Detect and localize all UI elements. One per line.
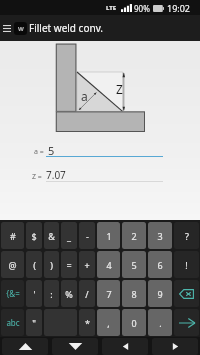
staticText: 0 [131,317,137,329]
button[interactable]: * [79,309,95,336]
button[interactable]: ' [26,280,42,307]
button[interactable]: , [97,309,120,336]
staticText: . [159,317,162,329]
button[interactable]: @ [1,251,24,278]
staticText: & [48,230,55,242]
staticText: @ [8,259,17,271]
button[interactable]: 7 [97,280,120,307]
staticText: = [66,259,72,271]
button[interactable]: abc [1,309,24,336]
staticText: 7.07 [46,168,66,182]
button[interactable]: + [79,251,95,278]
staticText: , [107,317,110,329]
staticText: Z [116,81,123,97]
button[interactable]: 8 [122,280,146,307]
button[interactable]: 1 [97,222,120,249]
staticText: LTE [106,4,117,12]
button[interactable]: $ [26,222,42,249]
staticText: a = [34,147,44,157]
button[interactable]: % [61,280,77,307]
staticText: Z = [32,172,42,182]
button[interactable]: Enter [174,309,199,336]
button[interactable]: ? [174,222,199,249]
button[interactable]: & [44,222,59,249]
button[interactable]: " [26,309,42,336]
staticText: # [10,230,16,242]
button[interactable]: 0 [122,309,146,336]
button[interactable]: = [61,251,77,278]
button[interactable]: Cursor up [2,338,48,355]
staticText: 90% [134,3,150,14]
staticText: 4 [106,259,112,271]
staticText: Fillet weld conv. [29,21,103,35]
button[interactable]: Open navigation menu [0,15,14,41]
staticText: ! [185,259,188,271]
staticText: _ [67,230,71,242]
staticText: % [65,288,73,300]
staticText: W [18,25,24,33]
staticText: {&= [6,288,20,299]
button[interactable]: 4 [97,251,120,278]
staticText: - [86,230,89,242]
button[interactable]: : [44,280,59,307]
staticText: " [32,317,36,329]
staticText: a [81,88,88,104]
staticText: 9 [157,288,163,300]
button[interactable]: {&= [1,280,24,307]
staticText: 2 [131,230,137,242]
button[interactable]: ( [26,251,42,278]
button[interactable]: ) [44,251,59,278]
button[interactable]: 6 [148,251,172,278]
button[interactable]: ! [174,251,199,278]
button[interactable]: Cursor right [152,338,198,355]
staticText: 7 [106,288,112,300]
button[interactable]: 2 [122,222,146,249]
button[interactable]: 9 [148,280,172,307]
button[interactable]: # [1,222,24,249]
staticText: + [84,259,90,271]
staticText: : [50,288,53,300]
staticText: abc [6,317,20,328]
staticText: ? [185,230,189,242]
staticText: 5 [131,259,137,271]
staticText: 6 [157,259,163,271]
staticText: * [85,317,90,329]
staticText: 19:02 [167,2,191,14]
button[interactable]: Cursor down [52,338,98,355]
button[interactable]: Backspace [174,280,199,307]
button[interactable]: . [148,309,172,336]
staticText: 5 [48,143,55,157]
staticText: ' [33,288,36,300]
staticText: / [85,288,89,300]
staticText: 8 [131,288,137,300]
button[interactable]: - [79,222,95,249]
staticText: $ [31,230,37,242]
staticText: ( [33,259,36,271]
button[interactable]: 3 [148,222,172,249]
button[interactable]: Cursor left [102,338,148,355]
button[interactable]: _ [61,222,77,249]
staticText: 1 [106,230,112,242]
staticText: 3 [157,230,163,242]
staticText: ) [50,259,53,271]
button[interactable]: 5 [122,251,146,278]
button[interactable]: / [79,280,95,307]
